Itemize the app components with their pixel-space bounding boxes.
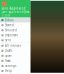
staticText: Snoozed xyxy=(5,28,17,32)
button[interactable]: Spam xyxy=(0,53,30,58)
staticText: Important xyxy=(5,33,18,37)
button[interactable]: Help xyxy=(0,68,30,73)
button[interactable]: Inbox xyxy=(0,18,30,23)
staticText: Drafts xyxy=(5,49,12,52)
staticText: Inbox xyxy=(5,18,13,22)
button[interactable]: Sent xyxy=(0,38,30,43)
staticText: Spam xyxy=(5,54,11,58)
button[interactable]: Snoozed xyxy=(0,28,30,33)
staticText: Sent xyxy=(5,39,11,42)
button[interactable]: Trash xyxy=(0,58,30,63)
staticText: Trash xyxy=(5,59,11,63)
staticText: jane.appleseed@mail.com xyxy=(2,10,30,17)
staticText: Starred xyxy=(5,23,14,27)
staticText: Settings xyxy=(5,64,16,68)
button[interactable]: Important xyxy=(0,33,30,38)
button[interactable]: Starred xyxy=(0,23,30,28)
button[interactable]: Drafts xyxy=(0,48,30,53)
staticText: All inboxes xyxy=(5,44,21,47)
staticText: Jane Appleseed xyxy=(2,7,26,10)
button[interactable]: Settings xyxy=(0,63,30,68)
staticText: Help xyxy=(5,69,12,73)
button[interactable]: All inboxes xyxy=(0,43,30,48)
